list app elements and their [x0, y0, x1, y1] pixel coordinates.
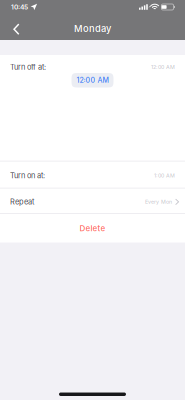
button[interactable]: 12:00 AM [71, 73, 113, 87]
staticText: 1:00 AM [154, 172, 175, 179]
staticText: 12:00 AM [151, 64, 175, 70]
staticText: Turn off at: [10, 62, 46, 71]
staticText: 12:00 AM [76, 76, 108, 84]
staticText: Monday [74, 23, 111, 34]
button[interactable]: Back [0, 14, 32, 40]
staticText: 10:45 [11, 3, 28, 11]
button[interactable]: Delete [0, 214, 185, 242]
staticText: Every Mon [145, 199, 172, 205]
button[interactable]: Repeat [0, 188, 185, 213]
staticText: Turn on at: [10, 171, 45, 180]
staticText: Repeat [10, 197, 34, 206]
staticText: Delete [79, 223, 105, 233]
